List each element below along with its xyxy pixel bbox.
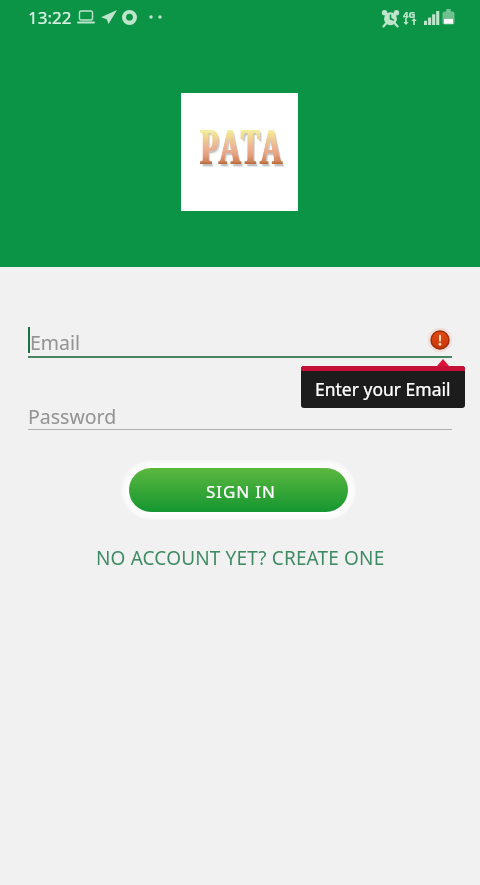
staticText: NO ACCOUNT YET? CREATE ONE	[96, 545, 385, 571]
staticText: PATA	[202, 117, 287, 181]
staticText: PATA	[199, 114, 283, 178]
button[interactable]: SIGN IN	[129, 468, 348, 512]
staticText: PATA	[201, 116, 285, 180]
button[interactable]: Error: Enter your Email	[427, 327, 453, 353]
button[interactable]: Enter your Email	[301, 366, 465, 408]
button[interactable]: Email	[28, 320, 452, 358]
staticText: Enter your Email	[315, 377, 451, 401]
staticText: Email	[30, 329, 81, 356]
staticText: 13:22	[28, 6, 72, 29]
staticText: Password	[28, 403, 117, 430]
staticText: PATA	[200, 114, 284, 178]
staticText: 4G	[403, 8, 416, 21]
button[interactable]: NO ACCOUNT YET? CREATE ONE	[0, 543, 480, 573]
staticText: PATA	[200, 114, 285, 178]
staticText: PATA	[202, 116, 286, 180]
staticText: SIGN IN	[206, 480, 276, 503]
